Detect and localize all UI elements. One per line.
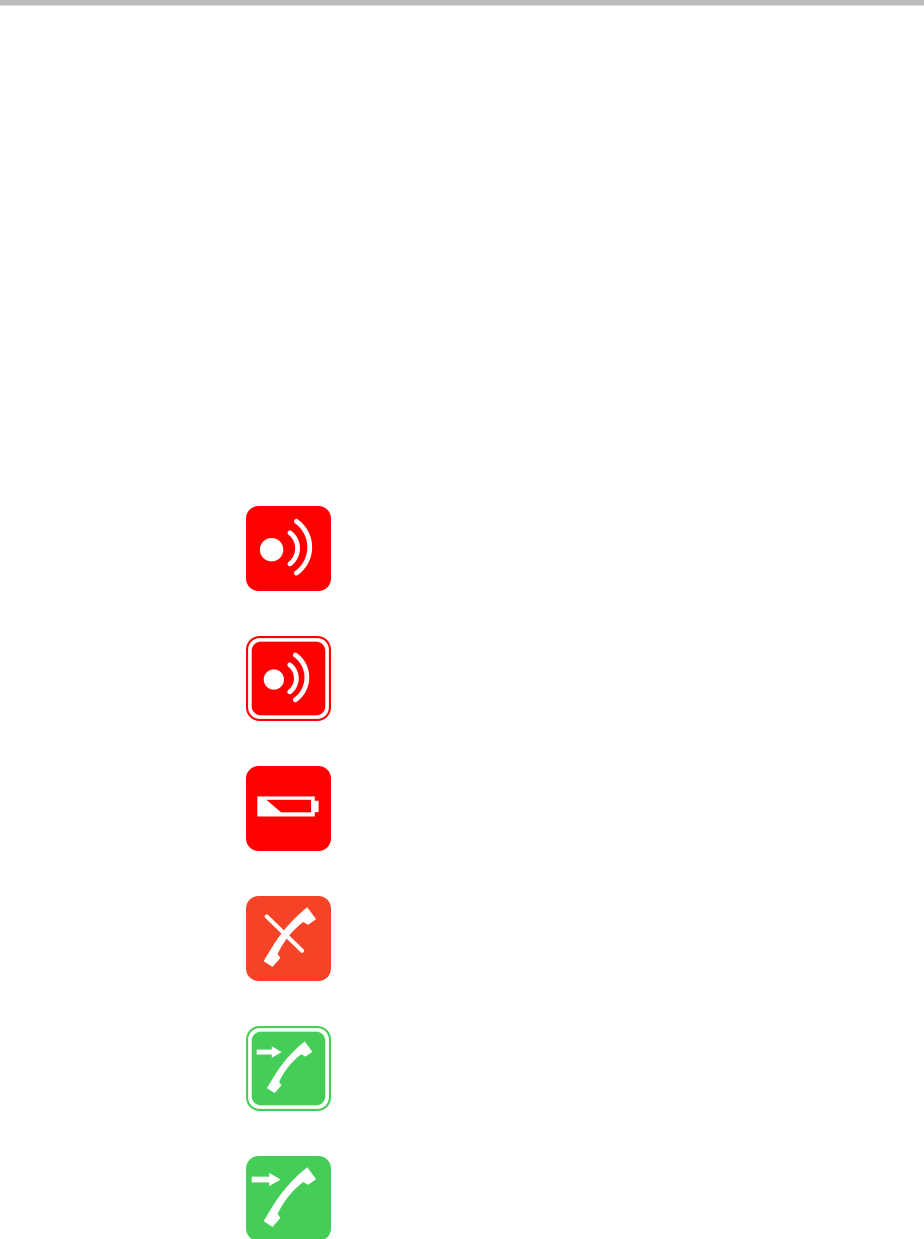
button[interactable]: Outgoing call, outlined [246,1026,331,1111]
button[interactable]: Live broadcast [246,506,331,591]
button[interactable]: Missed call [246,896,331,981]
button[interactable]: Outgoing call [246,1156,331,1239]
button[interactable]: Live broadcast, outlined [246,636,331,721]
button[interactable]: Low battery [246,766,331,851]
